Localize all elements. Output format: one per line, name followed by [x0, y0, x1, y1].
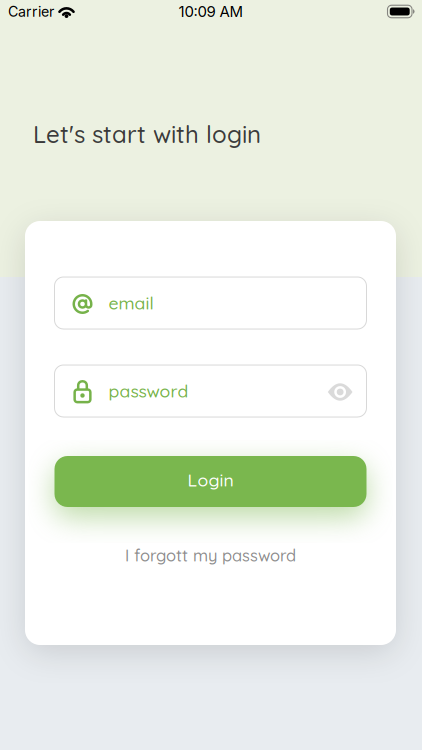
button[interactable]: I forgott my password: [125, 545, 296, 566]
staticText: I forgott my password: [125, 545, 296, 566]
staticText: Let's start with login: [33, 119, 261, 149]
staticText: email: [108, 292, 153, 314]
staticText: password: [108, 380, 188, 402]
staticText: 10:09 AM: [178, 2, 243, 20]
button[interactable]: password: [54, 365, 366, 417]
button[interactable]: Login: [54, 456, 366, 507]
staticText: Carrier: [8, 3, 54, 20]
button[interactable]: Show password: [328, 382, 366, 400]
button[interactable]: email: [54, 277, 366, 329]
staticText: Login: [187, 469, 233, 491]
